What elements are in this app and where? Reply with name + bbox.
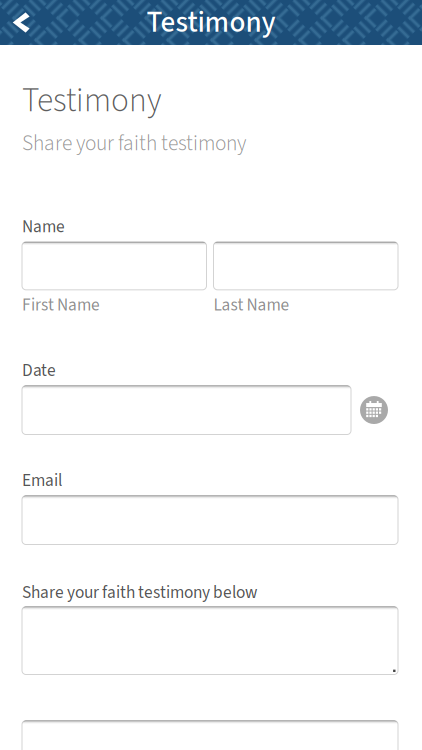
button[interactable]: Choose date (360, 396, 388, 424)
staticText: First Name (22, 293, 100, 317)
staticText: Name (22, 214, 65, 239)
staticText: Last Name (213, 293, 289, 317)
staticText: Share your faith testimony (22, 128, 246, 159)
staticText: Testimony (22, 77, 162, 124)
staticText: Email (22, 468, 62, 493)
staticText: Share your faith testimony below (22, 580, 257, 605)
staticText: Testimony (146, 2, 275, 43)
staticText: Date (22, 358, 56, 383)
button[interactable]: Back (0, 0, 54, 45)
